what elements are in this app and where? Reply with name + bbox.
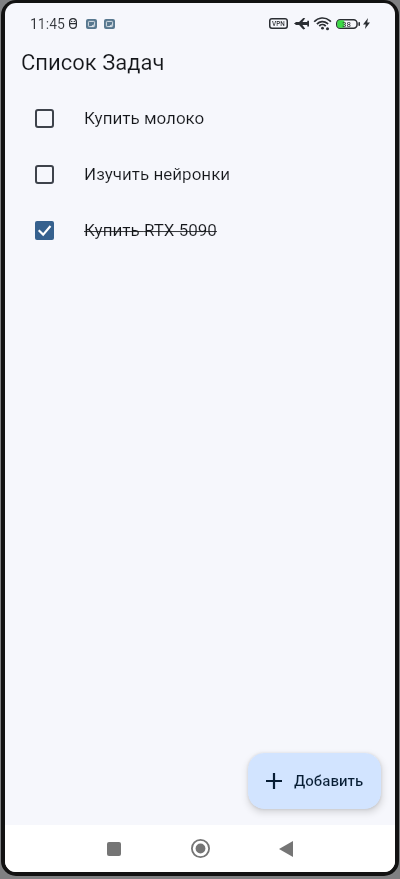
staticText: 38 (342, 20, 352, 29)
button[interactable]: Изучить нейронки (5, 146, 395, 202)
staticText: Список Задач (21, 50, 165, 76)
staticText: Купить RTX 5090 (84, 220, 217, 240)
staticText: 11:45 (30, 16, 65, 32)
button[interactable]: Добавить (248, 753, 381, 809)
button[interactable]: Home (157, 825, 243, 872)
staticText: VPN (272, 20, 285, 28)
staticText: Изучить нейронки (84, 164, 231, 184)
button[interactable]: Купить молоко (5, 90, 395, 146)
button[interactable]: Купить RTX 5090 (5, 202, 395, 258)
staticText: Добавить (294, 772, 364, 790)
button[interactable]: Back (243, 825, 329, 872)
button[interactable]: Recent apps (71, 825, 157, 872)
staticText: Купить молоко (84, 108, 205, 128)
